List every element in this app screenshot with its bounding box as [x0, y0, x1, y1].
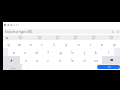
- button[interactable]: ?123: [3, 64, 22, 70]
- button[interactable]: x: [31, 56, 42, 64]
- button[interactable]: o: [96, 40, 108, 48]
- staticText: b: [71, 58, 74, 62]
- button[interactable]: l: [102, 48, 114, 56]
- staticText: w: [18, 42, 21, 46]
- staticText: .: [91, 65, 92, 69]
- button[interactable]: w: [14, 40, 25, 48]
- staticText: n: [83, 58, 86, 62]
- staticText: Search or type URL: [5, 30, 33, 34]
- staticText: u: [77, 42, 80, 46]
- button[interactable]: Shift: [3, 56, 20, 64]
- button[interactable]: Stickers: [48, 35, 66, 40]
- staticText: i: [90, 42, 91, 46]
- button[interactable]: c: [42, 56, 54, 64]
- staticText: m: [94, 58, 98, 62]
- button[interactable]: GIF: [30, 35, 48, 40]
- button[interactable]: u: [72, 40, 84, 48]
- button[interactable]: v: [54, 56, 66, 64]
- staticText: s: [24, 50, 26, 54]
- button[interactable]: q: [3, 40, 14, 48]
- button[interactable]: a: [8, 48, 19, 56]
- button[interactable]: p: [108, 40, 120, 48]
- staticText: z: [25, 58, 27, 62]
- button[interactable]: ,: [22, 64, 34, 70]
- staticText: h: [71, 50, 74, 54]
- staticText: x: [36, 58, 38, 62]
- button[interactable]: n: [78, 56, 90, 64]
- button[interactable]: z: [20, 56, 31, 64]
- button[interactable]: e: [25, 40, 36, 48]
- staticText: o: [101, 42, 103, 46]
- staticText: e: [30, 42, 32, 46]
- button[interactable]: Backspace: [102, 56, 120, 64]
- button[interactable]: d: [30, 48, 42, 56]
- button[interactable]: s: [19, 48, 30, 56]
- staticText: g: [59, 50, 62, 54]
- button[interactable]: More options: [115, 29, 120, 34]
- staticText: f: [47, 50, 49, 54]
- button[interactable]: b: [66, 56, 78, 64]
- staticText: a: [13, 50, 15, 54]
- button[interactable]: Expand toolbar: [3, 35, 11, 40]
- button[interactable]: Translate: [66, 35, 84, 40]
- staticText: t: [53, 42, 55, 46]
- staticText: q: [7, 42, 10, 46]
- button[interactable]: Emoji: [11, 35, 30, 40]
- button[interactable]: y: [60, 40, 72, 48]
- button[interactable]: Enter: [97, 65, 120, 69]
- button[interactable]: i: [84, 40, 96, 48]
- button[interactable]: Voice search: [110, 29, 115, 34]
- button[interactable]: j: [78, 48, 90, 56]
- button[interactable]: Clipboard: [84, 35, 102, 40]
- staticText: c: [47, 58, 49, 62]
- staticText: k: [95, 50, 97, 54]
- staticText: ?123: [10, 66, 16, 69]
- button[interactable]: Settings: [102, 35, 120, 40]
- button[interactable]: h: [66, 48, 78, 56]
- button[interactable]: g: [54, 48, 66, 56]
- button[interactable]: r: [36, 40, 48, 48]
- staticText: v: [59, 58, 61, 62]
- staticText: p: [113, 42, 116, 46]
- button[interactable]: t: [48, 40, 60, 48]
- button[interactable]: k: [90, 48, 102, 56]
- staticText: d: [35, 50, 38, 54]
- staticText: l: [108, 50, 109, 54]
- button[interactable]: Search or type URL: [3, 29, 120, 34]
- button[interactable]: m: [90, 56, 102, 64]
- staticText: y: [65, 42, 67, 46]
- button[interactable]: f: [42, 48, 54, 56]
- staticText: j: [84, 50, 85, 54]
- staticText: r: [41, 42, 43, 46]
